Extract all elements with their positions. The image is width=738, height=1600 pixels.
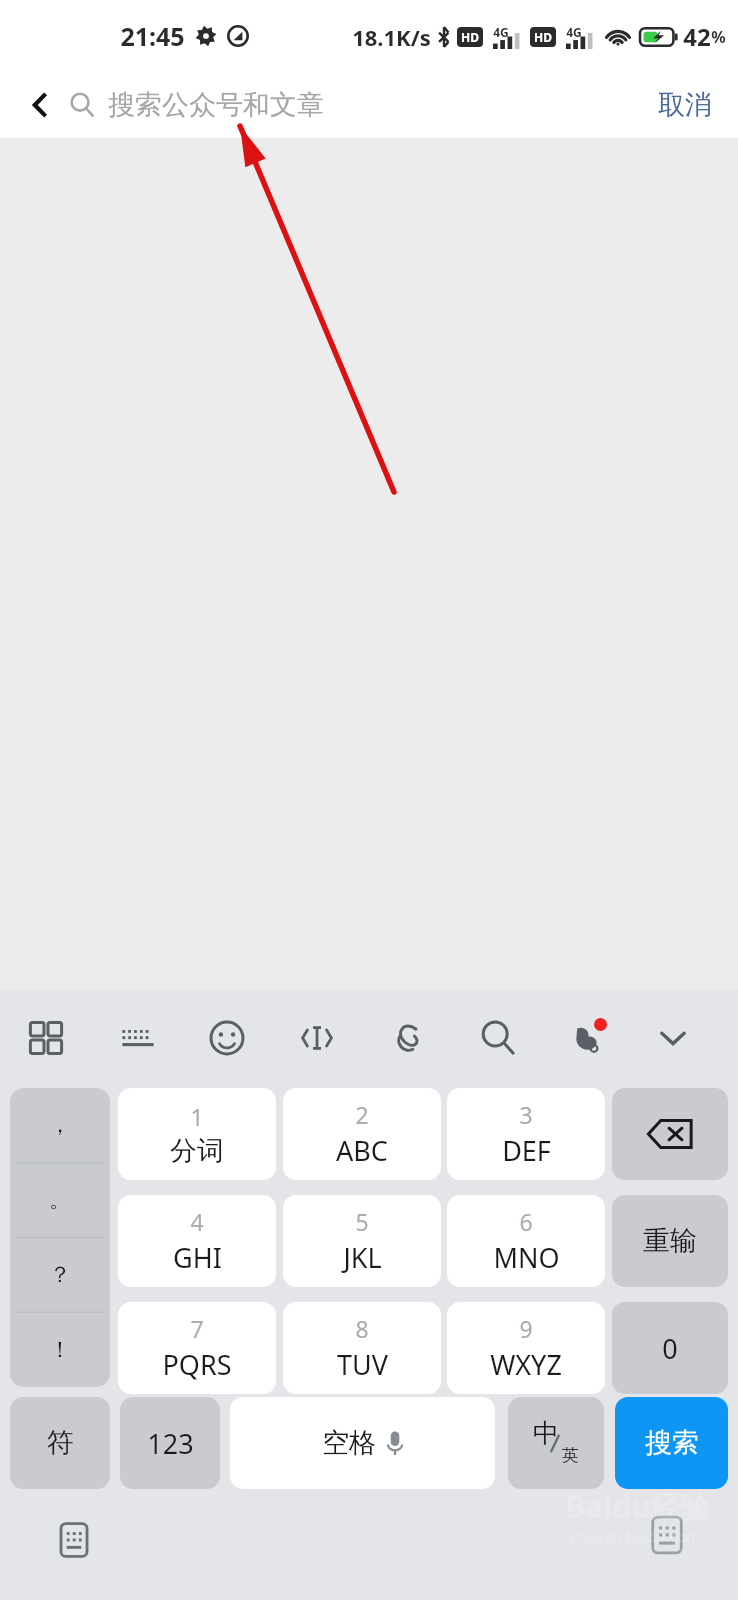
- button[interactable]: 4: [118, 1195, 276, 1287]
- staticText: 42: [683, 20, 711, 53]
- staticText: Baidu经验: [565, 1486, 711, 1527]
- staticText: jingyan.baidu.com: [570, 1526, 700, 1546]
- button[interactable]: 6: [447, 1195, 605, 1287]
- button[interactable]: 8: [283, 1302, 441, 1394]
- staticText: MNO: [493, 1239, 560, 1276]
- button[interactable]: 。: [10, 1162, 110, 1237]
- staticText: 空格: [322, 1426, 376, 1460]
- staticText: 英: [562, 1445, 579, 1466]
- staticText: ？: [49, 1261, 71, 1289]
- button[interactable]: 重输: [612, 1195, 728, 1287]
- staticText: 符: [47, 1426, 74, 1460]
- staticText: ！: [49, 1336, 71, 1364]
- button[interactable]: 9: [447, 1302, 605, 1394]
- staticText: PQRS: [162, 1346, 232, 1383]
- button[interactable]: Back: [18, 83, 62, 127]
- button[interactable]: 3: [447, 1088, 605, 1180]
- staticText: HD: [461, 29, 479, 45]
- button[interactable]: Text tools: [283, 1004, 351, 1072]
- staticText: WXYZ: [490, 1346, 562, 1383]
- button[interactable]: 符: [10, 1397, 110, 1489]
- button[interactable]: 123: [120, 1397, 220, 1489]
- staticText: 1: [190, 1101, 204, 1132]
- button[interactable]: Emoji: [193, 1004, 261, 1072]
- staticText: 0: [662, 1330, 678, 1367]
- staticText: 123: [147, 1425, 194, 1462]
- staticText: 搜索公众号和文章: [108, 88, 324, 122]
- button[interactable]: 5: [283, 1195, 441, 1287]
- button[interactable]: 2: [283, 1088, 441, 1180]
- staticText: TUV: [337, 1346, 388, 1383]
- button[interactable]: ？: [10, 1237, 110, 1312]
- button[interactable]: Hide keyboard: [639, 1004, 707, 1072]
- staticText: GHI: [173, 1239, 222, 1276]
- staticText: 搜索: [645, 1426, 699, 1460]
- button[interactable]: Search: [464, 1004, 532, 1072]
- button[interactable]: ！: [10, 1312, 110, 1387]
- staticText: HD: [534, 29, 552, 45]
- button[interactable]: Clipboard: [374, 1004, 442, 1072]
- staticText: 9: [519, 1313, 533, 1344]
- staticText: 中: [533, 1417, 559, 1450]
- staticText: 5: [355, 1206, 369, 1237]
- staticText: 18.1K/s: [352, 22, 431, 52]
- staticText: 21:45: [120, 19, 185, 53]
- button[interactable]: ，: [10, 1088, 110, 1162]
- button[interactable]: Voice: [552, 1004, 620, 1072]
- staticText: %: [711, 26, 726, 48]
- staticText: 2: [355, 1099, 369, 1130]
- button[interactable]: Backspace: [612, 1088, 728, 1180]
- button[interactable]: 0: [612, 1302, 728, 1394]
- staticText: DEF: [502, 1132, 551, 1169]
- button[interactable]: 中: [508, 1397, 604, 1489]
- button[interactable]: 取消: [652, 80, 718, 130]
- staticText: 取消: [658, 88, 712, 122]
- button[interactable]: Switch keyboard: [638, 1506, 696, 1564]
- button[interactable]: 7: [118, 1302, 276, 1394]
- button[interactable]: 空格: [230, 1397, 495, 1489]
- staticText: ABC: [336, 1132, 388, 1169]
- button[interactable]: Keyboard layout: [104, 1004, 172, 1072]
- button[interactable]: Panels: [12, 1004, 80, 1072]
- staticText: 3: [519, 1099, 533, 1130]
- staticText: 4G: [566, 24, 582, 40]
- staticText: 8: [355, 1313, 369, 1344]
- button[interactable]: 搜索: [615, 1397, 728, 1489]
- staticText: 7: [190, 1313, 204, 1344]
- staticText: 。: [49, 1186, 71, 1214]
- button[interactable]: Keyboard settings: [48, 1514, 100, 1566]
- staticText: 重输: [643, 1224, 697, 1258]
- button[interactable]: 搜索公众号和文章: [68, 72, 652, 138]
- staticText: 4: [190, 1206, 204, 1237]
- staticText: 分词: [170, 1134, 224, 1168]
- staticText: ，: [49, 1111, 71, 1139]
- staticText: 6: [519, 1206, 533, 1237]
- button[interactable]: 1: [118, 1088, 276, 1180]
- staticText: 4G: [493, 24, 509, 40]
- staticText: JKL: [343, 1239, 382, 1276]
